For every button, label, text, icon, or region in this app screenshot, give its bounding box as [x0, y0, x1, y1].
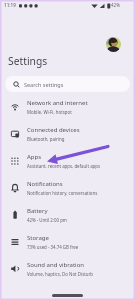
staticText: Storage — [27, 234, 49, 242]
staticText: Connected devices — [27, 126, 80, 134]
button[interactable]: Storage — [0, 228, 135, 255]
staticText: Notifications — [27, 180, 63, 188]
button[interactable]: Network and internet — [0, 93, 135, 120]
staticText: Volume, haptics, Do Not Disturb — [27, 271, 94, 277]
button[interactable]: Search settings — [5, 76, 130, 92]
staticText: 42% - Until 2:00 pm — [27, 217, 67, 223]
staticText: Battery — [27, 207, 48, 215]
button[interactable]: Sound and vibration — [0, 255, 135, 282]
staticText: Notification history, conversations — [27, 190, 98, 196]
button[interactable]: Notifications — [0, 174, 135, 201]
button[interactable]: Apps — [0, 147, 135, 174]
button[interactable]: Connected devices — [0, 120, 135, 147]
staticText: Settings — [8, 54, 48, 68]
button[interactable]: Battery — [0, 201, 135, 228]
staticText: Network and internet — [27, 99, 88, 107]
staticText: 11:19 — [4, 2, 16, 8]
staticText: Bluetooth, pairing — [27, 136, 65, 142]
staticText: 73% used - 34.74 GB free — [27, 244, 79, 250]
staticText: 42% — [111, 2, 120, 8]
staticText: Mobile, Wi-Fi, hotspot — [27, 109, 72, 115]
staticText: Apps — [27, 153, 42, 161]
staticText: Search settings — [24, 81, 64, 88]
staticText: Assistant, recent apps, default apps — [27, 163, 101, 169]
staticText: Sound and vibration — [27, 261, 84, 269]
button[interactable] — [106, 37, 121, 52]
